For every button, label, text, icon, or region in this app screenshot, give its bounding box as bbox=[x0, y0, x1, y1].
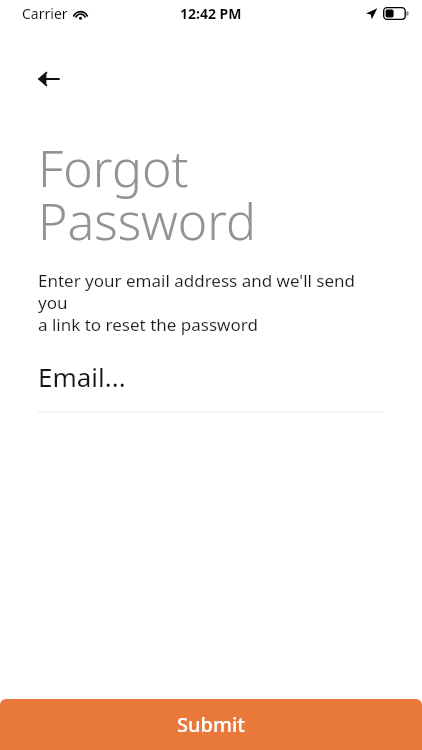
staticText: Submit bbox=[177, 711, 245, 738]
staticText: Carrier bbox=[22, 4, 68, 23]
staticText: 12:42 PM bbox=[180, 4, 242, 23]
button[interactable]: Back bbox=[26, 57, 70, 101]
staticText: Email... bbox=[38, 359, 126, 394]
staticText: Enter your email address and we'll send … bbox=[38, 269, 388, 336]
staticText: Forgot Password bbox=[38, 134, 402, 254]
button[interactable]: Submit bbox=[0, 699, 422, 750]
button[interactable]: Email... bbox=[0, 359, 422, 413]
